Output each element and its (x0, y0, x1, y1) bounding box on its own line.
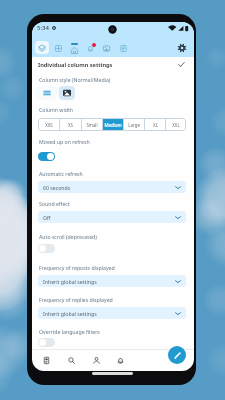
staticText: XL (153, 122, 158, 128)
staticText: Moved up on refresh (39, 138, 90, 145)
staticText: Large (128, 122, 140, 128)
button[interactable]: Lists (116, 41, 130, 55)
button[interactable]: XL (145, 118, 165, 131)
button[interactable]: Settings (175, 41, 189, 55)
button[interactable]: Compose post (168, 346, 186, 364)
button[interactable]: XXS (38, 118, 59, 131)
button[interactable]: XS (60, 118, 81, 131)
button[interactable]: Small (82, 118, 102, 131)
button[interactable]: Medium (103, 118, 123, 131)
staticText: Frequency of reposts displayed (39, 264, 115, 271)
button[interactable]: XXL (166, 118, 186, 131)
button[interactable]: Add column (51, 41, 65, 55)
staticText: XXL (172, 122, 180, 128)
staticText: Frequency of replies displayed (39, 296, 113, 303)
staticText: Sound effect (39, 200, 70, 207)
staticText: 60 seconds (43, 184, 71, 191)
button[interactable]: Decks (35, 41, 49, 54)
button[interactable]: Notifications (83, 41, 97, 55)
button[interactable]: Media (59, 86, 75, 100)
button[interactable]: Media (99, 41, 113, 55)
staticText: XS (68, 122, 73, 128)
staticText: Automatic refresh (39, 170, 83, 177)
button[interactable]: Done (177, 60, 186, 69)
button[interactable]: Normal (36, 86, 57, 100)
button[interactable]: Inherit global settings (38, 275, 186, 287)
staticText: Inherit global settings (43, 278, 97, 285)
staticText: Column width (39, 106, 74, 113)
button[interactable]: Search (62, 351, 80, 369)
staticText: Small (86, 122, 98, 128)
button[interactable]: Home (37, 351, 55, 369)
staticText: Off (43, 214, 51, 221)
staticText: Medium (104, 122, 122, 128)
staticText: Inherit global settings (43, 310, 97, 317)
button[interactable]: Inherit global settings (38, 307, 186, 319)
staticText: Individual column settings (38, 61, 113, 69)
button[interactable]: Large (124, 118, 144, 131)
staticText: 5:34 (37, 24, 49, 32)
button[interactable]: Home (67, 41, 81, 55)
staticText: XXS (45, 122, 53, 128)
button[interactable]: Off (38, 211, 186, 223)
button[interactable]: 60 seconds (38, 181, 186, 193)
staticText: Auto scroll (deprecated) (39, 233, 97, 240)
staticText: Override language filters (39, 328, 100, 335)
button[interactable]: Notifications (111, 351, 129, 369)
button[interactable]: Toggle (38, 152, 55, 161)
button[interactable]: Toggle (38, 244, 55, 253)
button[interactable]: Toggle (38, 338, 55, 347)
staticText: Column style (Normal/Media) (39, 76, 111, 83)
button[interactable]: Profile (87, 351, 105, 369)
